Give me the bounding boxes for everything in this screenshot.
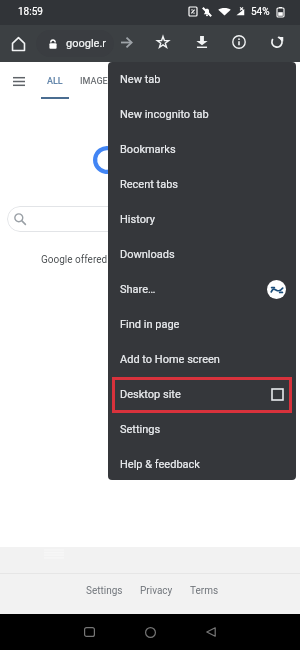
staticText: IMAGES — [80, 76, 114, 87]
button[interactable]: Terms — [190, 585, 219, 597]
staticText: google.r — [66, 37, 107, 50]
staticText: Privacy — [140, 585, 173, 597]
button[interactable]: History — [108, 202, 296, 237]
staticText: Downloads — [120, 248, 175, 261]
staticText: Settings — [120, 423, 161, 436]
button[interactable]: Settings — [86, 585, 123, 597]
staticText: Share… — [120, 283, 156, 296]
button[interactable]: Bookmarks — [108, 132, 296, 167]
staticText: Bookmarks — [120, 143, 176, 156]
button[interactable]: Menu — [6, 70, 32, 92]
button[interactable]: Home — [134, 616, 166, 648]
button[interactable]: google.r — [36, 30, 114, 57]
button[interactable]: New tab — [108, 62, 296, 97]
button[interactable]: ALL — [41, 70, 69, 100]
staticText: Desktop site — [120, 388, 181, 401]
staticText: 18:59 — [18, 6, 43, 18]
staticText: Terms — [190, 585, 219, 597]
button[interactable]: Recent tabs — [108, 167, 296, 202]
button[interactable]: Back — [195, 616, 227, 648]
button[interactable]: Forward — [111, 27, 141, 57]
button[interactable] — [7, 206, 217, 232]
staticText: New incognito tab — [120, 108, 209, 121]
staticText: 54% — [251, 6, 270, 18]
button[interactable]: New incognito tab — [108, 97, 296, 132]
button[interactable]: Page info — [224, 27, 254, 57]
staticText: ALL — [47, 76, 63, 87]
staticText: Recent tabs — [120, 178, 179, 191]
button[interactable]: IMAGES — [80, 70, 114, 100]
button[interactable]: Privacy — [140, 585, 173, 597]
button[interactable]: Settings — [108, 412, 296, 447]
staticText: History — [120, 213, 155, 226]
button[interactable]: Downloads — [108, 237, 296, 272]
staticText: Google offered in: — [41, 254, 120, 266]
button[interactable]: Share… — [108, 272, 296, 307]
button[interactable]: Home — [4, 30, 32, 58]
button[interactable]: Help & feedback — [108, 447, 296, 480]
button[interactable]: Bookmark — [148, 27, 178, 57]
staticText: New tab — [120, 73, 161, 86]
button[interactable]: Recents — [73, 616, 105, 648]
button[interactable]: Download — [187, 27, 217, 57]
staticText: Add to Home screen — [120, 353, 220, 366]
staticText: Settings — [86, 585, 123, 597]
button[interactable]: Reload — [262, 27, 292, 57]
staticText: Help & feedback — [120, 458, 200, 471]
button[interactable]: Add to Home screen — [108, 342, 296, 377]
button[interactable]: Desktop site — [108, 377, 296, 412]
button[interactable]: Find in page — [108, 307, 296, 342]
staticText: Find in page — [120, 318, 180, 331]
